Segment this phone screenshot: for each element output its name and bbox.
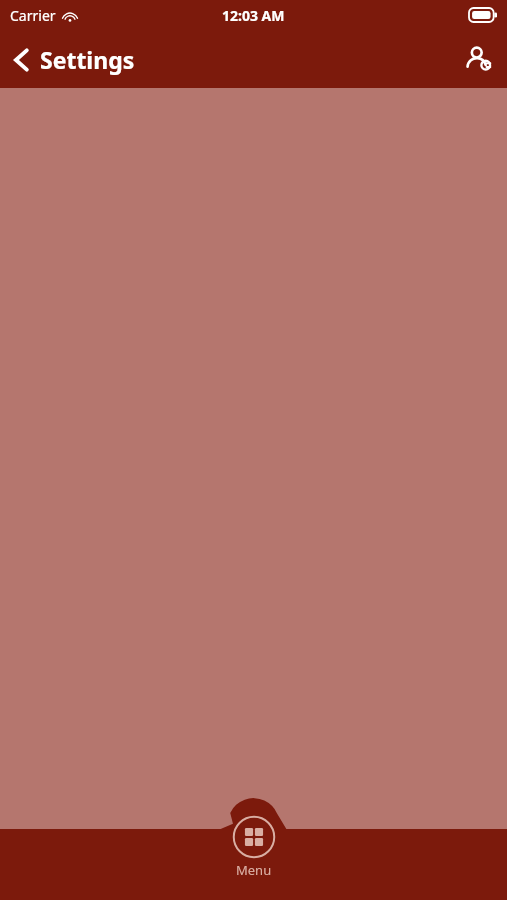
button[interactable]: Menu <box>232 813 276 879</box>
button[interactable]: Account <box>451 37 507 81</box>
staticText: Menu <box>236 861 272 879</box>
other: Menu <box>232 815 276 859</box>
staticText: Settings <box>40 44 135 75</box>
staticText: Carrier <box>10 6 56 25</box>
other: Back <box>12 47 30 73</box>
staticText: 12:03 AM <box>222 6 285 25</box>
button[interactable]: Back <box>0 36 149 83</box>
